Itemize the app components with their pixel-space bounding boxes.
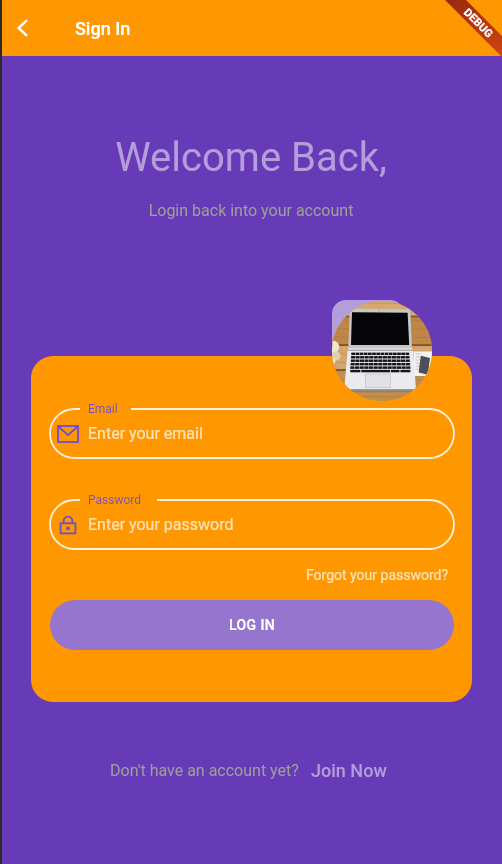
button[interactable]: Back: [3, 8, 43, 48]
staticText: Sign In: [75, 18, 131, 39]
button[interactable]: Forgot your password?: [306, 567, 449, 583]
button[interactable]: [50, 500, 454, 549]
staticText: Forgot your password?: [306, 567, 449, 583]
staticText: Enter your email: [88, 424, 203, 443]
staticText: Welcome Back,: [0, 134, 502, 181]
button[interactable]: [50, 409, 454, 458]
staticText: Join Now: [311, 760, 387, 781]
button[interactable]: Join Now: [311, 760, 387, 781]
staticText: Enter your password: [88, 515, 234, 534]
staticText: Don't have an account yet?: [110, 761, 299, 780]
staticText: Password: [88, 493, 142, 507]
staticText: LOG IN: [229, 617, 276, 633]
button[interactable]: LOG IN: [50, 600, 454, 650]
staticText: DEBUG: [461, 6, 496, 41]
staticText: Email: [88, 402, 118, 416]
staticText: Login back into your account: [0, 201, 502, 220]
